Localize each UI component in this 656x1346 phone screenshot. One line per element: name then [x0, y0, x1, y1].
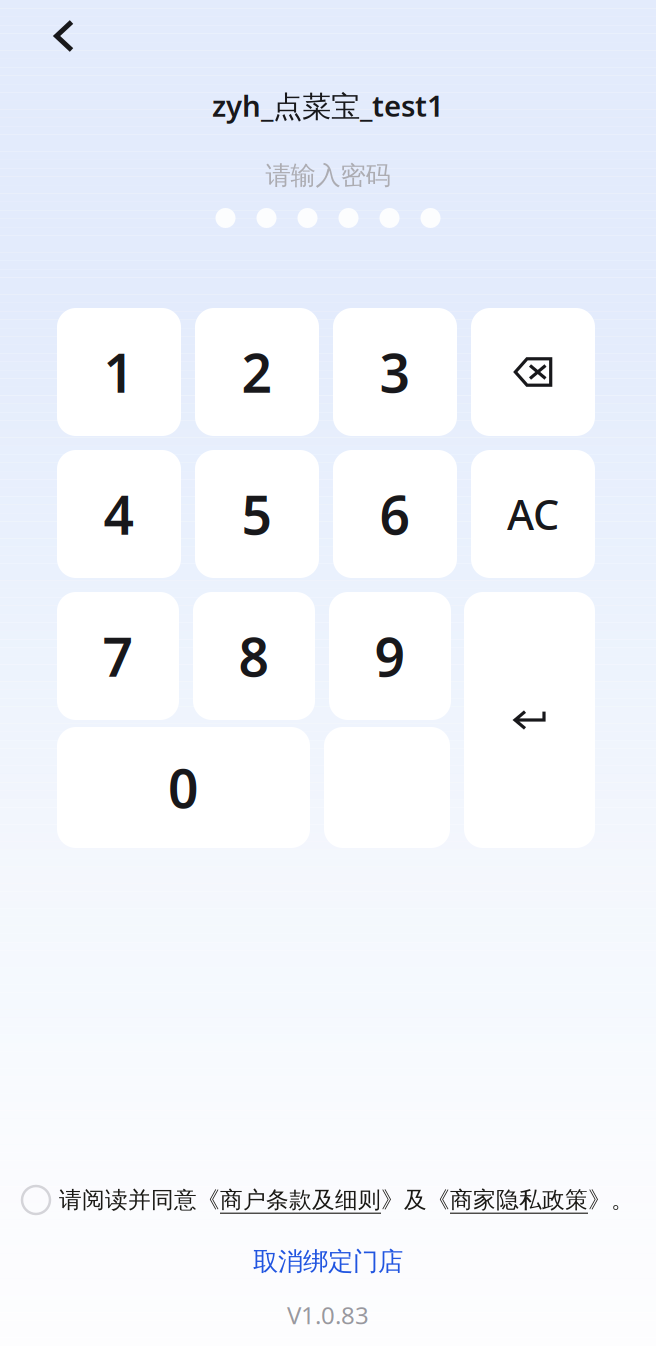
staticText: 请输入密码: [265, 160, 390, 191]
button[interactable]: [195, 308, 319, 436]
staticText: 0: [168, 752, 199, 823]
staticText: V1.0.83: [287, 1299, 369, 1331]
staticText: AC: [507, 487, 559, 541]
button[interactable]: [57, 727, 310, 848]
button[interactable]: Delete: [471, 308, 595, 436]
button[interactable]: [195, 450, 319, 578]
staticText: 7: [102, 621, 133, 691]
button[interactable]: [57, 450, 181, 578]
button[interactable]: [333, 450, 457, 578]
button[interactable]: [333, 308, 457, 436]
staticText: 2: [241, 337, 272, 407]
button[interactable]: [57, 308, 181, 436]
button[interactable]: [329, 592, 451, 720]
staticText: 1: [103, 337, 134, 407]
button[interactable]: Agree to terms: [22, 1186, 50, 1214]
button[interactable]: [471, 450, 595, 578]
button[interactable]: Back: [34, 6, 94, 66]
staticText: 3: [379, 337, 410, 407]
button[interactable]: 取消绑定门店: [253, 1246, 403, 1277]
staticText: 8: [238, 621, 269, 691]
staticText: 5: [241, 479, 272, 549]
button[interactable]: [193, 592, 315, 720]
staticText: 取消绑定门店: [253, 1246, 403, 1277]
staticText: 请阅读并同意《商户条款及细则》及《商家隐私政策》。: [59, 1186, 634, 1214]
button[interactable]: [57, 592, 179, 720]
staticText: 9: [374, 621, 405, 691]
staticText: zyh_点菜宝_test1: [212, 86, 444, 125]
staticText: 4: [103, 479, 134, 549]
staticText: 6: [379, 479, 410, 549]
button[interactable]: 请阅读并同意《商户条款及细则》及《商家隐私政策》。: [59, 1186, 634, 1214]
button[interactable]: Enter: [464, 592, 595, 848]
